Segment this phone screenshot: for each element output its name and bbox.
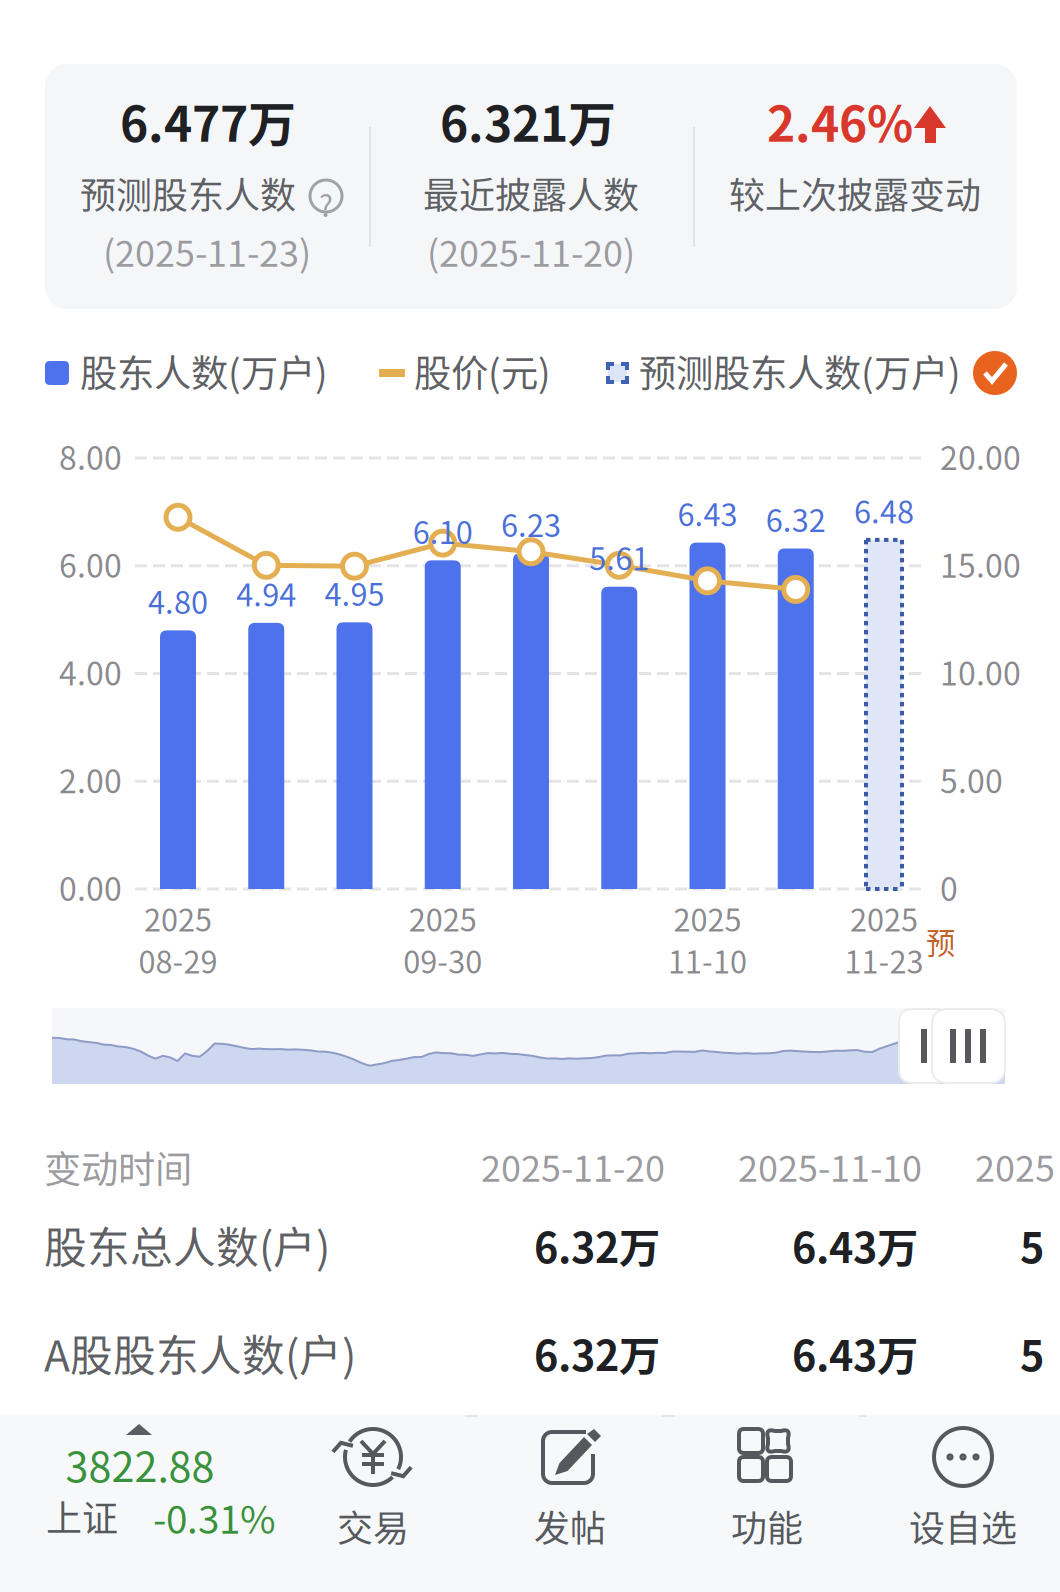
staticText: 10.00 [940, 648, 1021, 695]
staticText: 5 [1020, 1215, 1044, 1275]
staticText: 设自选 [909, 1500, 1017, 1552]
staticText: 6.43万 [792, 1215, 918, 1275]
staticText: 5.61 [589, 535, 649, 579]
staticText: 6.43万 [792, 1323, 918, 1383]
staticText: 上证 [46, 1490, 118, 1542]
staticText: (2025-11-20) [427, 225, 635, 277]
staticText: 2025 [850, 896, 918, 940]
staticText: 2025 [673, 896, 741, 940]
staticText: 20.00 [940, 433, 1021, 479]
staticText: 6.32 [766, 496, 826, 541]
staticText: 股东总人数(户) [44, 1214, 330, 1276]
staticText: 预 [926, 920, 955, 962]
staticText: 6.48 [854, 488, 914, 532]
staticText: 最近披露人数 [423, 167, 639, 219]
staticText: 6.10 [413, 508, 473, 553]
staticText: 4.94 [236, 571, 296, 615]
staticText: 发帖 [534, 1500, 606, 1552]
staticText: 11-10 [668, 938, 747, 982]
staticText: 5 [1020, 1323, 1044, 1383]
staticText: 6.23 [501, 501, 561, 546]
button[interactable]: 发帖 [478, 1415, 662, 1592]
button[interactable]: 3822.88 [0, 1415, 281, 1592]
staticText: ? [319, 183, 333, 225]
staticText: 8.00 [59, 433, 122, 479]
staticText: -0.31% [153, 1489, 276, 1545]
staticText: A股股东人数(户) [44, 1322, 356, 1384]
staticText: 08-29 [138, 938, 217, 982]
staticText: 6.321万 [440, 86, 616, 155]
staticText: 2025-11-10 [738, 1140, 922, 1192]
staticText: 变动时间 [44, 1140, 192, 1194]
staticText: 6.32万 [534, 1215, 660, 1275]
staticText: 5.00 [940, 756, 1003, 802]
staticText: (2025-11-23) [103, 225, 311, 277]
staticText: 6.43 [677, 491, 737, 535]
staticText: 2025 [975, 1140, 1055, 1192]
staticText: 11-23 [844, 938, 923, 982]
staticText: 0 [940, 864, 958, 910]
button[interactable]: 交易 [281, 1415, 465, 1592]
staticText: 6.32万 [534, 1323, 660, 1383]
staticText: 2025 [409, 896, 477, 940]
staticText: 6.00 [59, 541, 122, 587]
staticText: 股价(元) [414, 344, 551, 398]
staticText: 2.46% [767, 86, 913, 155]
staticText: 4.80 [148, 578, 208, 623]
staticText: 交易 [337, 1500, 409, 1552]
staticText: 预测股东人数 [80, 167, 296, 219]
staticText: 预测股东人数(万户) [639, 344, 961, 398]
staticText: 6.477万 [120, 86, 296, 155]
staticText: 2025-11-20 [481, 1140, 665, 1192]
staticText: 2025 [144, 896, 212, 940]
staticText: 功能 [731, 1500, 803, 1552]
staticText: 3822.88 [65, 1434, 214, 1494]
staticText: 09-30 [403, 938, 482, 982]
button[interactable]: 功能 [675, 1415, 859, 1592]
staticText: 较上次披露变动 [729, 167, 981, 219]
staticText: 15.00 [940, 541, 1021, 587]
staticText: 0.00 [59, 864, 122, 910]
staticText: 2.00 [59, 756, 122, 802]
staticText: 股东人数(万户) [80, 344, 328, 398]
button[interactable]: 设自选 [866, 1415, 1060, 1592]
staticText: 4.95 [324, 570, 384, 615]
staticText: 4.00 [59, 648, 122, 695]
